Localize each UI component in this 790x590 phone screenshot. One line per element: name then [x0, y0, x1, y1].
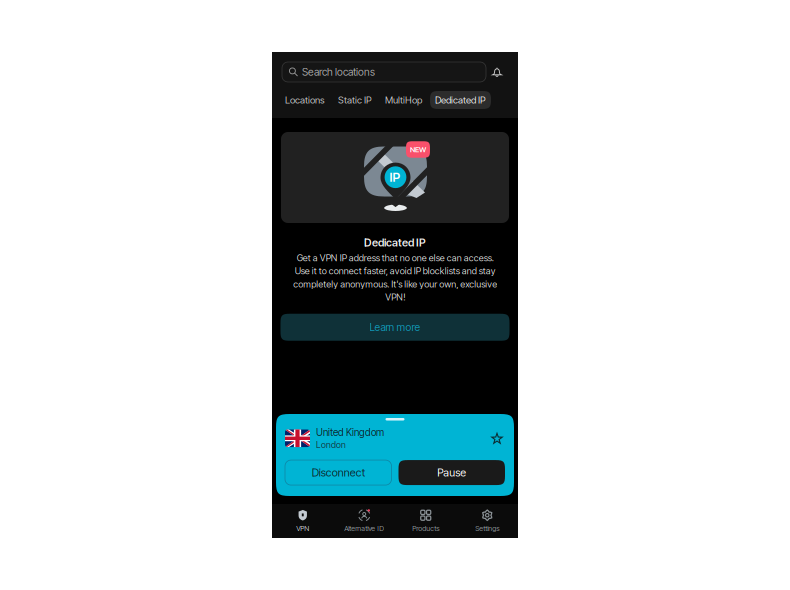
button[interactable]: MultiHop — [380, 91, 427, 109]
staticText: Dedicated IP — [364, 236, 426, 249]
staticText: NEW — [410, 145, 426, 154]
button[interactable]: Notifications — [486, 62, 508, 82]
staticText: Products — [412, 524, 439, 533]
button[interactable]: Alternative ID — [333, 508, 395, 534]
button[interactable]: Favourite — [489, 430, 505, 446]
staticText: United Kingdom — [316, 426, 384, 438]
button[interactable]: VPN — [272, 508, 333, 534]
staticText: VPN — [296, 524, 309, 533]
staticText: Disconnect — [312, 466, 365, 479]
button[interactable]: Pause — [398, 460, 505, 485]
staticText: Search locations — [302, 66, 375, 78]
button[interactable]: Learn more — [280, 314, 509, 341]
button[interactable]: Locations — [280, 91, 330, 109]
button[interactable]: Disconnect — [285, 460, 391, 485]
staticText: London — [316, 439, 346, 450]
staticText: Settings — [475, 524, 499, 533]
button[interactable]: Settings — [456, 508, 518, 534]
staticText: Locations — [285, 94, 325, 106]
staticText: IP — [389, 169, 400, 185]
button[interactable]: Static IP — [333, 91, 377, 109]
staticText: Static IP — [338, 94, 372, 106]
staticText: Alternative ID — [344, 524, 384, 533]
staticText: MultiHop — [385, 94, 422, 106]
staticText: Learn more — [369, 321, 420, 334]
button[interactable]: Products — [395, 508, 456, 534]
button[interactable]: Dedicated IP — [430, 91, 491, 109]
staticText: Pause — [437, 466, 466, 479]
staticText: Get a VPN IP address that no one else ca… — [293, 252, 497, 303]
staticText: Dedicated IP — [435, 94, 486, 106]
